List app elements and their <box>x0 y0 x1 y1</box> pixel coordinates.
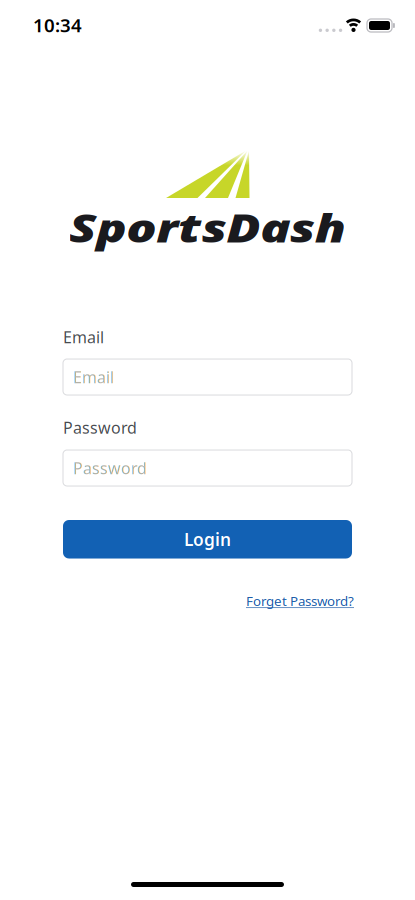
staticText: Password <box>73 457 147 479</box>
button[interactable]: Forget Password? <box>246 592 354 610</box>
textField[interactable]: Password <box>73 457 352 479</box>
staticText: Email <box>73 366 114 388</box>
button[interactable]: Login <box>63 520 352 558</box>
staticText: Login <box>184 528 231 551</box>
textField[interactable]: Email <box>73 366 352 388</box>
staticText: 10:34 <box>33 12 82 37</box>
staticText: Email <box>63 326 104 348</box>
staticText: Password <box>63 417 137 438</box>
staticText: Forget Password? <box>246 592 354 610</box>
staticText: SportsDash <box>101 202 314 253</box>
